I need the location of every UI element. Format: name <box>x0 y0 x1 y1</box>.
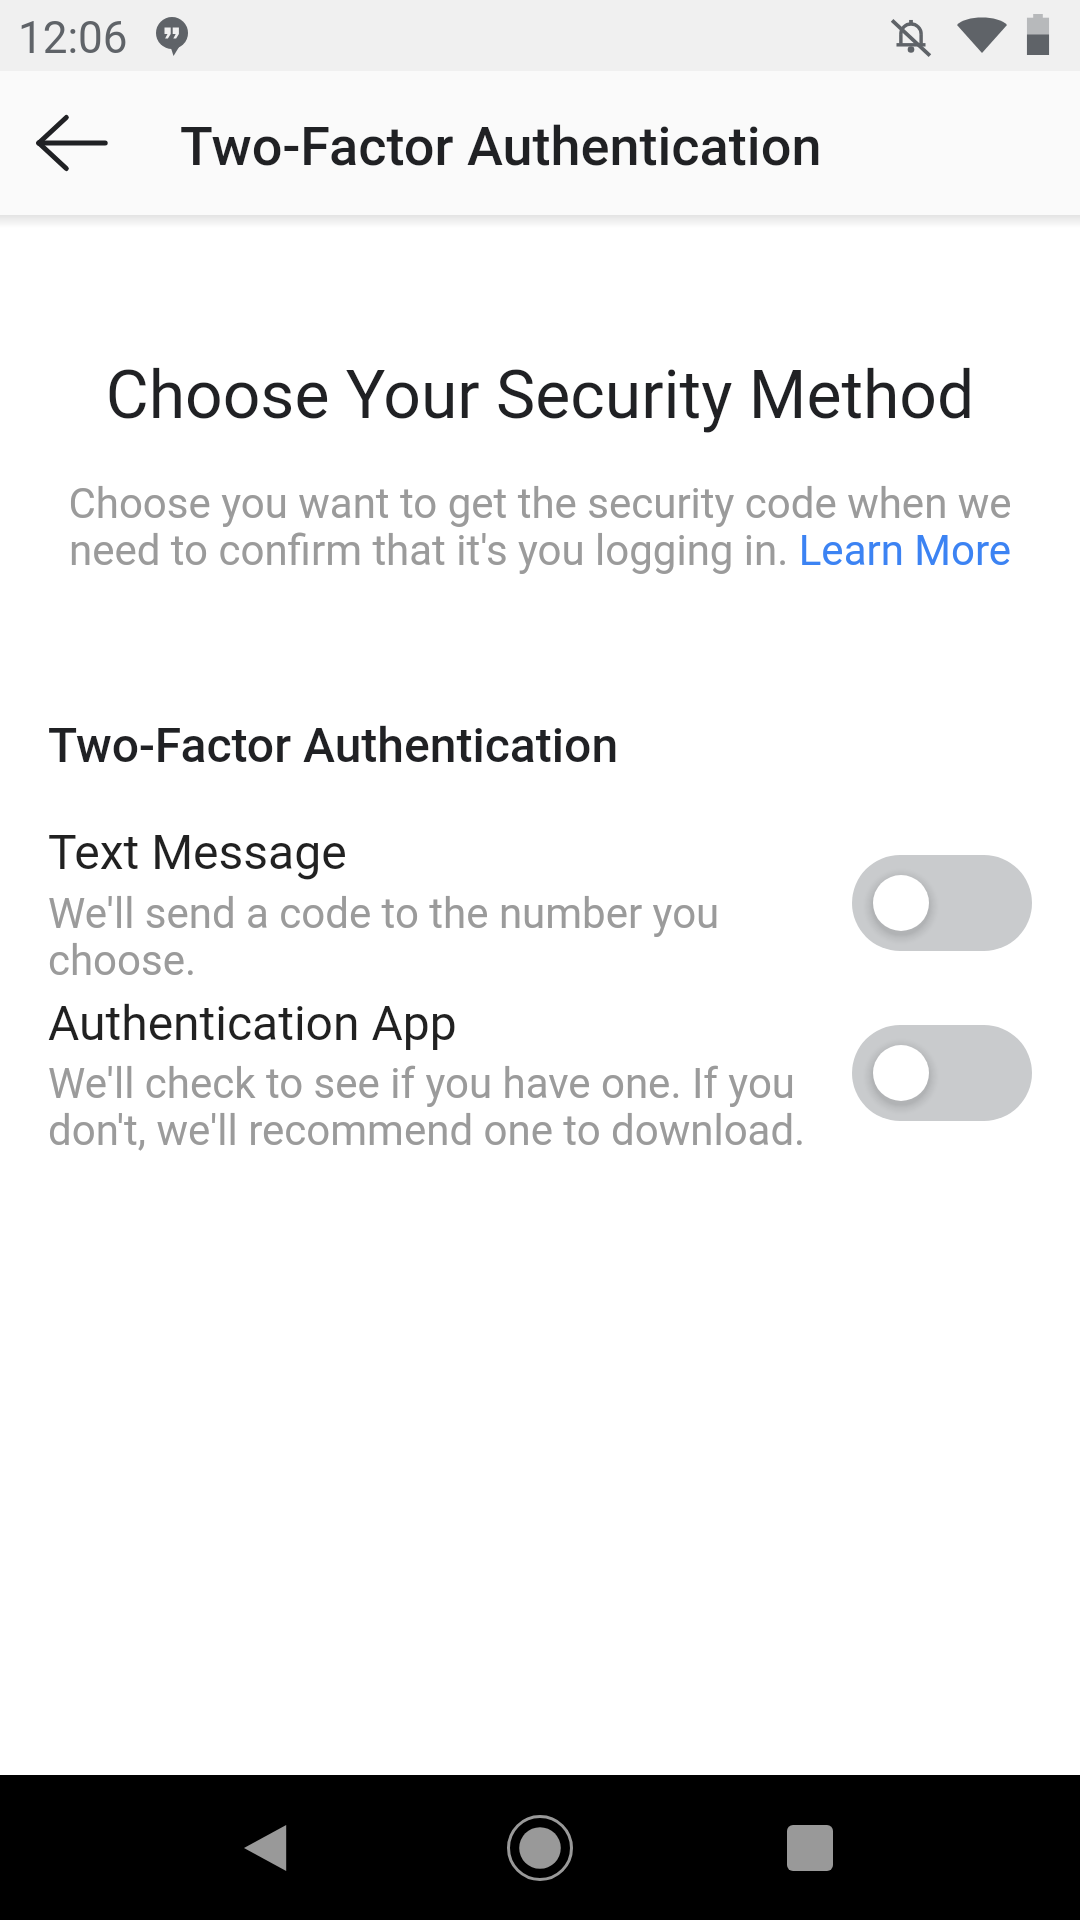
staticText: Choose you want to get the security code… <box>62 479 1018 575</box>
button[interactable]: Home <box>480 1788 600 1908</box>
button[interactable]: Authentication app toggle <box>852 1025 1032 1121</box>
button[interactable]: Navigate up <box>12 83 132 203</box>
staticText: Two-Factor Authentication <box>180 115 822 178</box>
button[interactable]: Text Message <box>0 810 1080 980</box>
staticText: Text Message <box>48 824 347 880</box>
staticText: Choose Your Security Method <box>0 357 1080 434</box>
button[interactable]: Recent apps <box>750 1788 870 1908</box>
staticText: We'll check to see if you have one. If y… <box>48 1059 838 1155</box>
staticText: 12:06 <box>18 12 128 64</box>
staticText: We'll send a code to the number you choo… <box>48 889 788 985</box>
button[interactable]: Text message toggle <box>852 855 1032 951</box>
button[interactable]: Back <box>207 1788 327 1908</box>
button[interactable]: Authentication App <box>0 980 1080 1150</box>
staticText: Two-Factor Authentication <box>48 717 619 773</box>
button[interactable]: Learn More <box>797 524 1013 574</box>
staticText: Authentication App <box>48 995 457 1051</box>
